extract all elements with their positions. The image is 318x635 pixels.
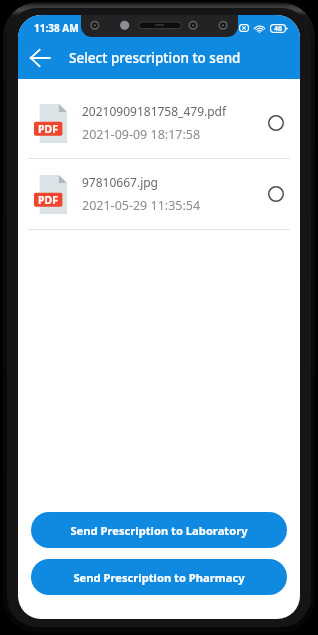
button[interactable]: Back	[26, 44, 54, 72]
button[interactable]: PDF	[18, 88, 300, 158]
staticText: PDF	[38, 122, 58, 136]
button[interactable]: PDF	[18, 159, 300, 229]
staticText: 46	[274, 24, 283, 33]
button[interactable]: Send Prescription to Laboratory	[31, 512, 287, 548]
staticText: Select prescription to send	[69, 49, 241, 67]
staticText: 20210909181758_479.pdf	[82, 103, 227, 119]
staticText: Send Prescription to Pharmacy	[73, 570, 245, 585]
staticText: PDF	[38, 193, 58, 207]
staticText: Send Prescription to Laboratory	[70, 523, 248, 538]
button[interactable]: Send Prescription to Pharmacy	[31, 559, 287, 595]
staticText: 97810667.jpg	[82, 174, 158, 190]
button[interactable]: Select file	[261, 108, 291, 138]
button[interactable]: Select file	[261, 179, 291, 209]
staticText: 2021-05-29 11:35:54	[82, 197, 201, 214]
staticText: 2021-09-09 18:17:58	[82, 126, 201, 143]
staticText: 11:38 AM	[34, 21, 79, 35]
